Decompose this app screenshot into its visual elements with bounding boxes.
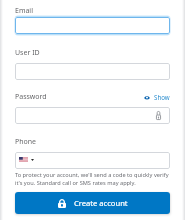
staticText: Email: [15, 6, 33, 16]
staticText: Password: [15, 92, 47, 102]
staticText: Phone: [15, 137, 37, 147]
staticText: User ID: [15, 48, 40, 58]
button[interactable]: [15, 152, 170, 169]
other: Show password: [144, 95, 150, 100]
button[interactable]: Create account: [15, 192, 170, 214]
button[interactable]: [15, 107, 170, 124]
button[interactable]: [15, 63, 170, 80]
staticText: Show: [154, 93, 170, 101]
button[interactable]: [15, 16, 170, 35]
button[interactable]: Show password: [144, 93, 170, 101]
staticText: Create account: [74, 198, 128, 208]
staticText: To protect your account, we'll send a co…: [15, 171, 170, 186]
